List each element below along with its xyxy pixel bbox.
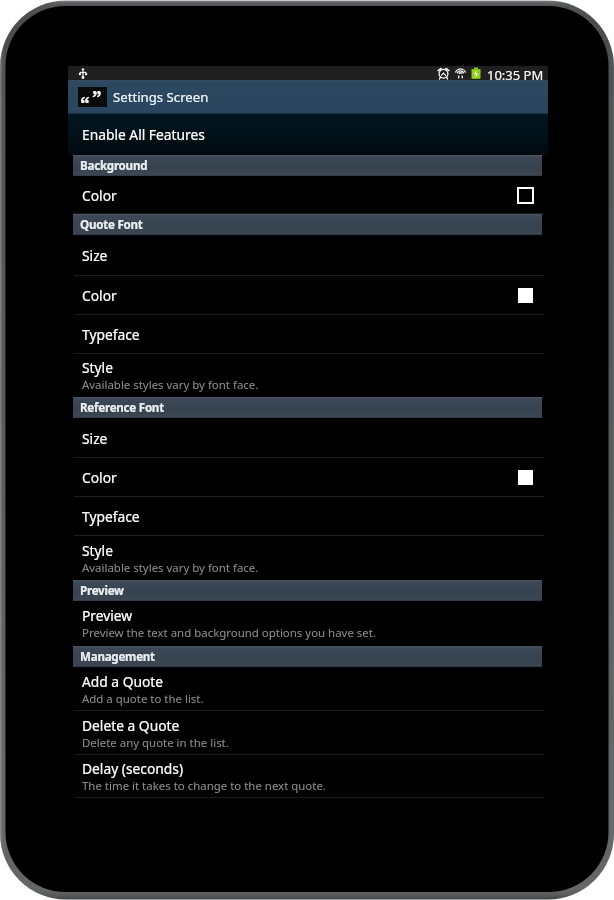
button[interactable]: Delay (seconds): [68, 755, 548, 798]
button[interactable]: Typeface: [68, 497, 548, 536]
button[interactable]: Size: [68, 418, 548, 458]
staticText: Add a quote to the list.: [82, 691, 204, 707]
staticText: Style: [82, 541, 113, 560]
staticText: Size: [82, 246, 108, 265]
staticText: Available styles vary by font face.: [82, 377, 259, 393]
button[interactable]: Style: [68, 354, 548, 397]
staticText: Typeface: [82, 325, 140, 344]
staticText: ”: [92, 84, 102, 104]
staticText: Delete any quote in the list.: [82, 735, 229, 751]
staticText: Style: [82, 358, 113, 377]
staticText: 10:35 PM: [487, 66, 544, 80]
staticText: Enable All Features: [82, 125, 205, 144]
button[interactable]: Delete a Quote: [68, 711, 548, 755]
staticText: The time it takes to change to the next …: [82, 778, 326, 794]
button[interactable]: Colour swatch: [518, 188, 533, 203]
staticText: Delete a Quote: [82, 716, 180, 735]
staticText: Available styles vary by font face.: [82, 560, 259, 576]
staticText: Preview the text and background options …: [82, 625, 376, 641]
staticText: Management: [80, 649, 155, 665]
staticText: Size: [82, 429, 108, 448]
button[interactable]: Size: [68, 235, 548, 276]
button[interactable]: Color: [68, 276, 548, 315]
staticText: Add a Quote: [82, 672, 164, 691]
button[interactable]: Color: [68, 176, 548, 214]
staticText: Quote Font: [80, 217, 143, 233]
staticText: Preview: [80, 583, 124, 599]
staticText: Color: [82, 468, 117, 487]
staticText: “: [80, 90, 90, 110]
other: Quotes app icon: [78, 87, 107, 107]
button[interactable]: Quotes app icon: [68, 80, 548, 114]
staticText: Reference Font: [80, 400, 164, 416]
button[interactable]: Preview: [68, 601, 548, 646]
button[interactable]: Enable All Features: [68, 114, 548, 155]
staticText: Settings Screen: [113, 88, 209, 106]
button[interactable]: Color: [68, 458, 548, 497]
staticText: Typeface: [82, 507, 140, 526]
staticText: Color: [82, 186, 117, 205]
button[interactable]: Typeface: [68, 315, 548, 354]
staticText: Color: [82, 286, 117, 305]
staticText: Preview: [82, 606, 133, 625]
button[interactable]: Style: [68, 536, 548, 580]
staticText: Delay (seconds): [82, 759, 184, 778]
staticText: Background: [80, 158, 148, 174]
button[interactable]: Add a Quote: [68, 667, 548, 711]
